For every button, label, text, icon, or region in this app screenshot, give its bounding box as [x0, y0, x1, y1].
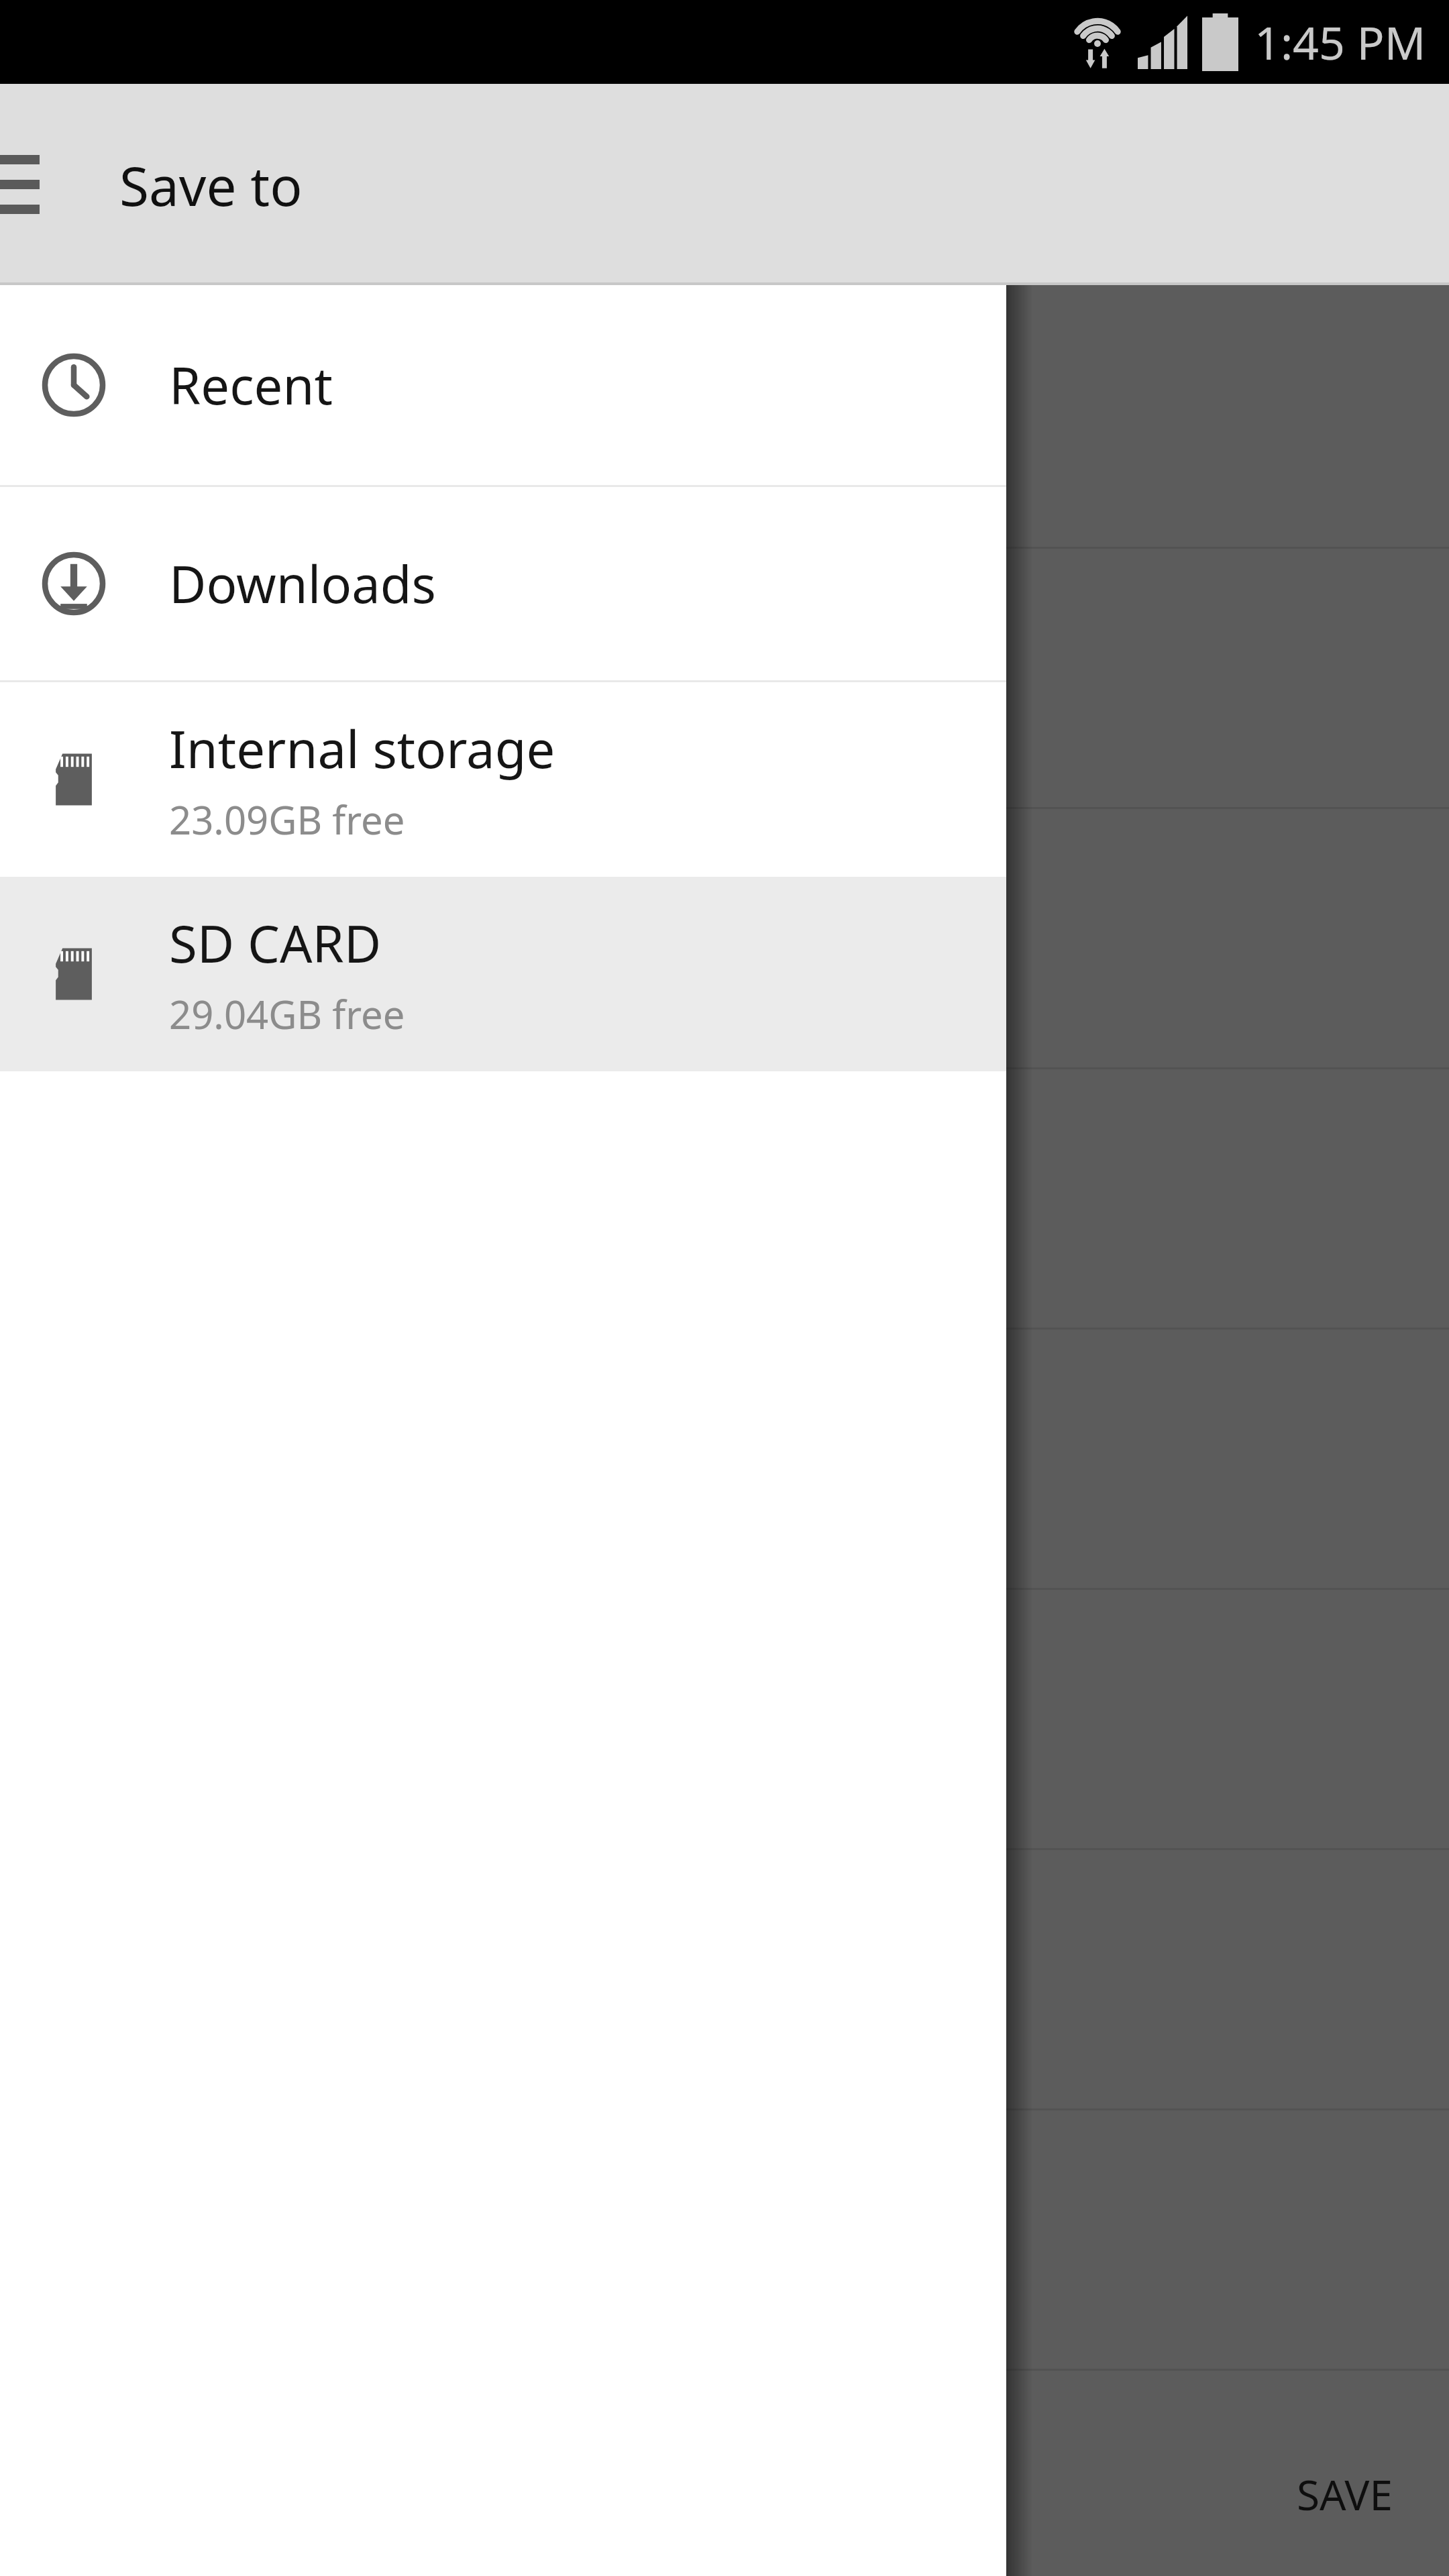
staticText: Downloads [169, 549, 437, 619]
staticText: 1:45 PM [1254, 11, 1426, 73]
button[interactable]: SAVE [1267, 2439, 1422, 2549]
staticText: Recent [169, 350, 333, 420]
staticText: Save to [119, 148, 303, 221]
staticText: 23.09GB free [169, 793, 405, 846]
staticText: 29.04GB free [169, 987, 405, 1040]
staticText: SAVE [1297, 2466, 1393, 2522]
button[interactable]: Downloads [0, 487, 1006, 680]
button[interactable]: Internal storage [0, 682, 1006, 877]
button[interactable]: Open navigation drawer [0, 141, 56, 228]
staticText: Internal storage [169, 714, 555, 784]
button[interactable]: SD CARD [0, 877, 1006, 1071]
staticText: SD CARD [169, 908, 382, 978]
button[interactable]: Recent [0, 285, 1006, 485]
